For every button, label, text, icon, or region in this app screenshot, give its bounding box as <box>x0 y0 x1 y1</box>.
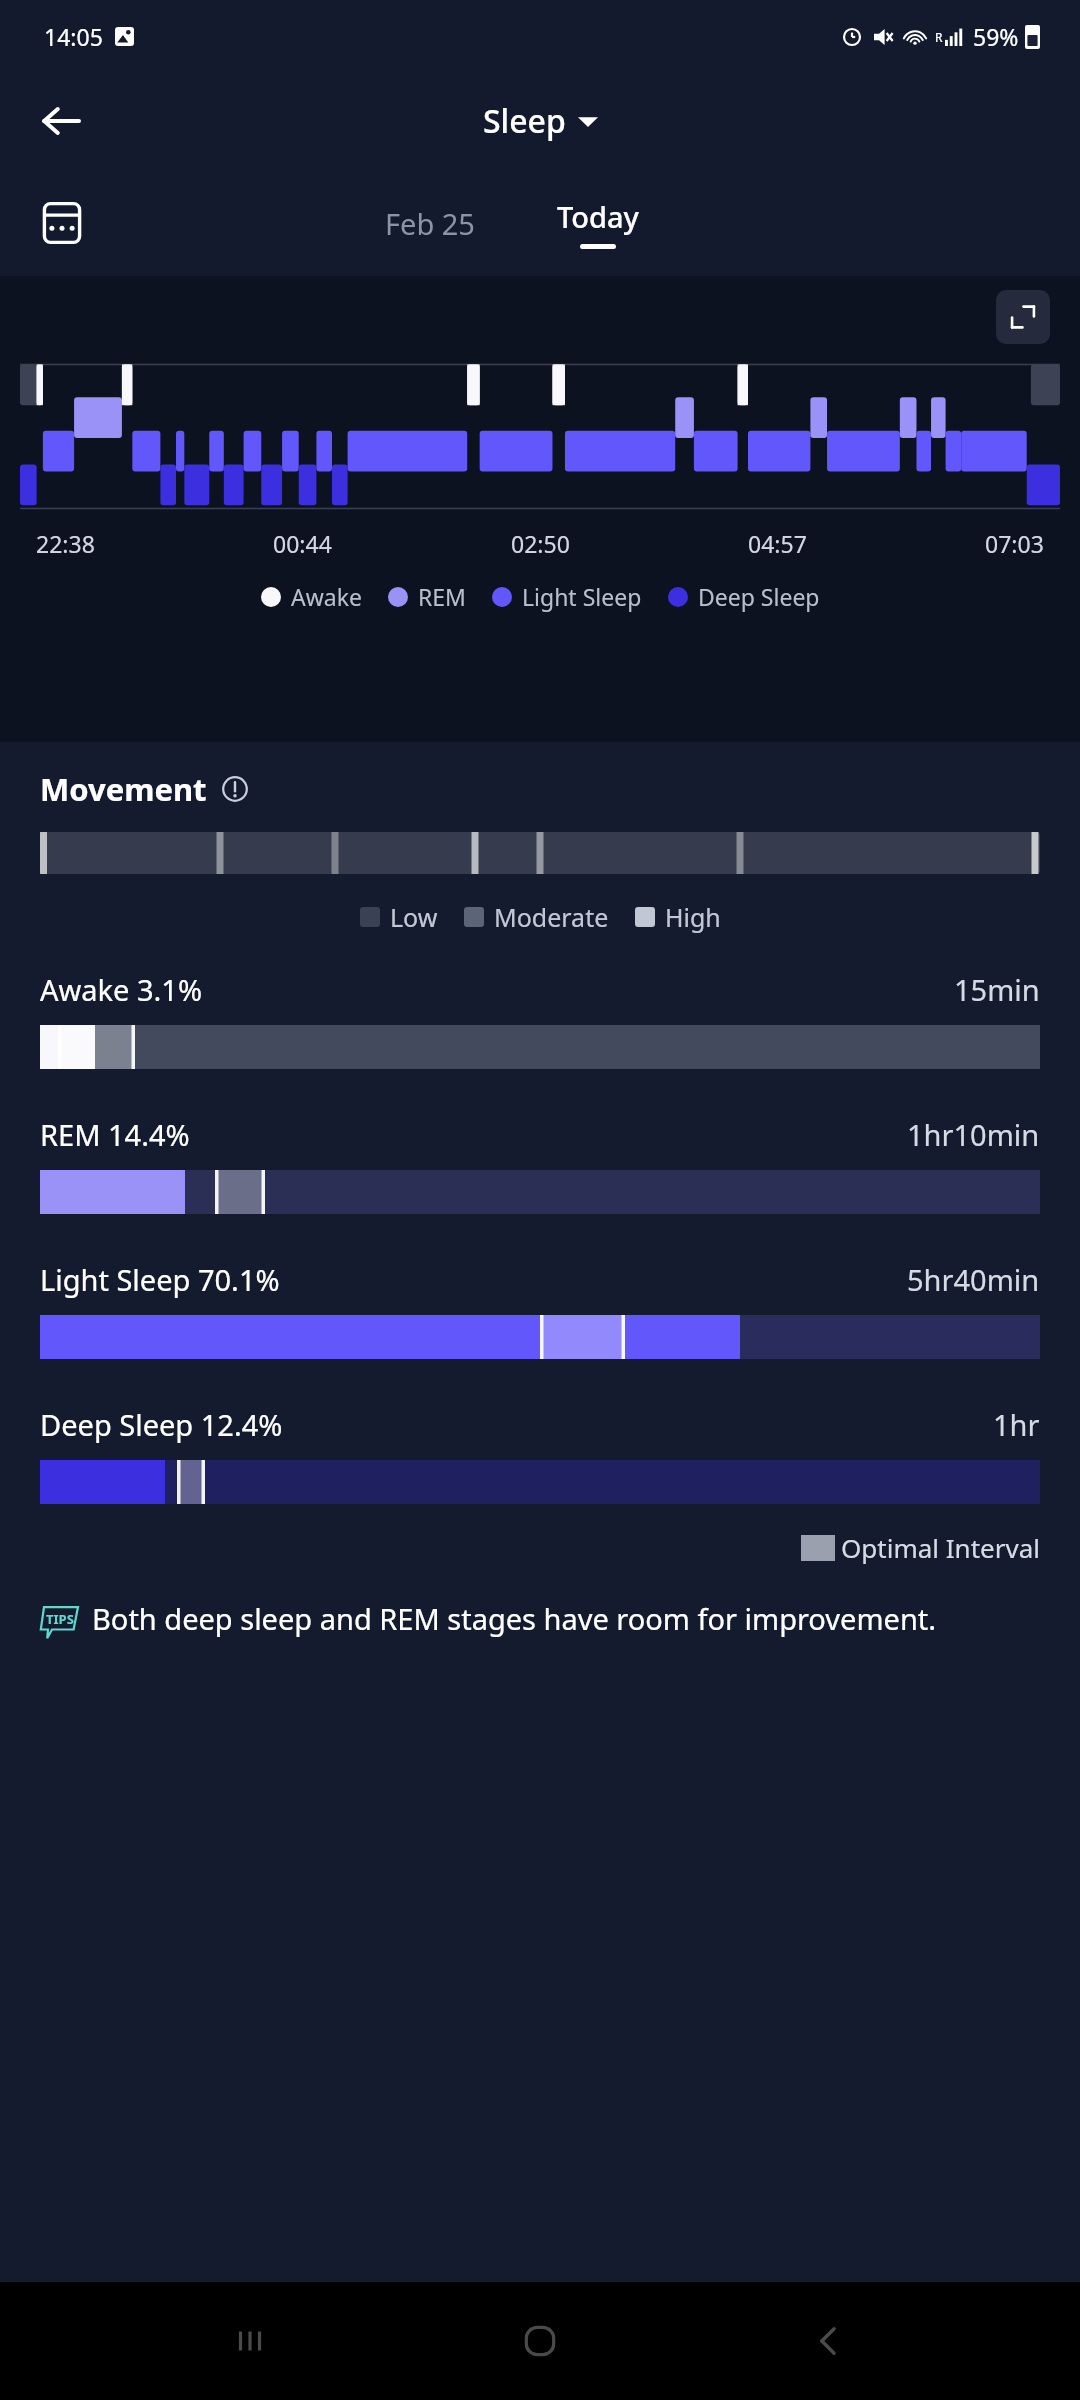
button[interactable]: Sleep <box>483 99 598 143</box>
staticText: 07:03 <box>985 528 1044 559</box>
staticText: Low <box>390 900 438 934</box>
button[interactable]: Awake 3.1% <box>40 970 1040 1069</box>
button[interactable]: Deep Sleep 12.4% <box>40 1405 1040 1504</box>
button[interactable]: TIPS <box>40 1599 1040 1639</box>
staticText: 14:05 <box>44 21 103 52</box>
staticText: 5hr40min <box>907 1260 1040 1299</box>
button[interactable]: Feb 25 <box>385 204 475 243</box>
staticText: 02:50 <box>511 528 570 559</box>
staticText: 1hr <box>993 1405 1040 1444</box>
button[interactable]: Calendar <box>30 191 94 255</box>
staticText: Awake <box>291 581 362 612</box>
button[interactable]: Today <box>557 197 639 249</box>
staticText: Sleep <box>483 99 566 143</box>
button[interactable]: Home <box>500 2301 580 2381</box>
staticText: REM <box>418 581 466 612</box>
staticText: 22:38 <box>36 528 95 559</box>
staticText: Light Sleep 70.1% <box>40 1260 280 1299</box>
staticText: TIPS <box>46 1610 74 1628</box>
staticText: High <box>665 900 721 934</box>
staticText: R <box>935 29 943 45</box>
button[interactable]: Expand <box>996 290 1050 344</box>
staticText: 1hr10min <box>907 1115 1040 1154</box>
staticText: 00:44 <box>273 528 332 559</box>
staticText: Today <box>557 197 639 236</box>
staticText: Awake 3.1% <box>40 970 203 1009</box>
staticText: Optimal Interval <box>841 1530 1040 1565</box>
button[interactable]: REM 14.4% <box>40 1115 1040 1214</box>
staticText: 59% <box>973 21 1019 52</box>
staticText: Deep Sleep 12.4% <box>40 1405 283 1444</box>
button[interactable]: Back <box>790 2301 870 2381</box>
staticText: 15min <box>954 970 1040 1009</box>
button[interactable]: Light Sleep 70.1% <box>40 1260 1040 1359</box>
staticText: REM 14.4% <box>40 1115 190 1154</box>
staticText: Moderate <box>494 900 609 934</box>
staticText: Both deep sleep and REM stages have room… <box>92 1599 1040 1638</box>
button[interactable]: Movement info <box>219 773 251 805</box>
staticText: Feb 25 <box>385 204 475 243</box>
staticText: Light Sleep <box>522 581 642 612</box>
staticText: Deep Sleep <box>698 581 820 612</box>
staticText: Movement <box>40 768 207 810</box>
button[interactable]: Recents <box>210 2301 290 2381</box>
button[interactable]: Back <box>30 90 92 152</box>
staticText: 04:57 <box>748 528 807 559</box>
